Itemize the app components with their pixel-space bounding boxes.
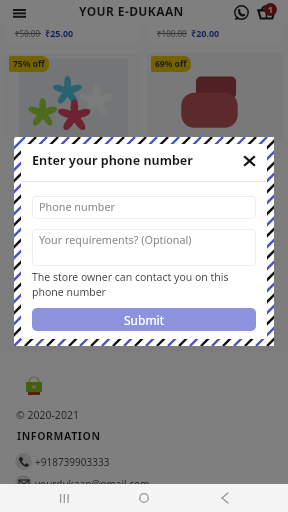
- staticText: Enter your phone number: [32, 152, 193, 169]
- staticText: 69% off: [155, 58, 187, 70]
- staticText: The store owner can contact you on this …: [32, 270, 256, 299]
- button[interactable]: 75% off: [5, 49, 141, 141]
- staticText: ₹50.00: [15, 28, 41, 39]
- button[interactable]: Your requirements? (Optional): [32, 229, 256, 266]
- button[interactable]: Home: [127, 484, 161, 512]
- staticText: INFORMATION: [17, 429, 101, 443]
- button[interactable]: Back: [208, 484, 242, 512]
- staticText: yourdukaan@gmail.com: [35, 477, 150, 491]
- button[interactable]: WhatsApp: [231, 2, 251, 22]
- staticText: © 2020-2021: [16, 408, 79, 422]
- button[interactable]: Cart: [256, 2, 277, 23]
- staticText: ₹100.00: [157, 28, 187, 39]
- button[interactable]: Submit: [32, 308, 256, 331]
- button[interactable]: Close: [238, 150, 260, 172]
- staticText: ₹20.00: [191, 27, 220, 39]
- button[interactable]: +918739903333: [15, 453, 110, 470]
- staticText: 1: [268, 4, 273, 16]
- button[interactable]: ₹100.00: [147, 22, 283, 45]
- staticText: Phone number: [39, 199, 115, 214]
- staticText: +918739903333: [35, 455, 110, 469]
- button[interactable]: ₹50.00: [5, 22, 141, 45]
- button[interactable]: yourdukaan@gmail.com: [15, 475, 150, 492]
- button[interactable]: 69% off: [147, 49, 283, 141]
- staticText: ₹25.00: [45, 27, 74, 39]
- staticText: Submit: [124, 312, 165, 328]
- staticText: Your requirements? (Optional): [39, 232, 192, 247]
- button[interactable]: Phone number: [32, 196, 256, 219]
- button[interactable]: Recents: [47, 484, 81, 512]
- staticText: 75% off: [13, 58, 45, 70]
- button[interactable]: Menu: [9, 3, 29, 23]
- staticText: YOUR E-DUKAAN: [79, 3, 184, 19]
